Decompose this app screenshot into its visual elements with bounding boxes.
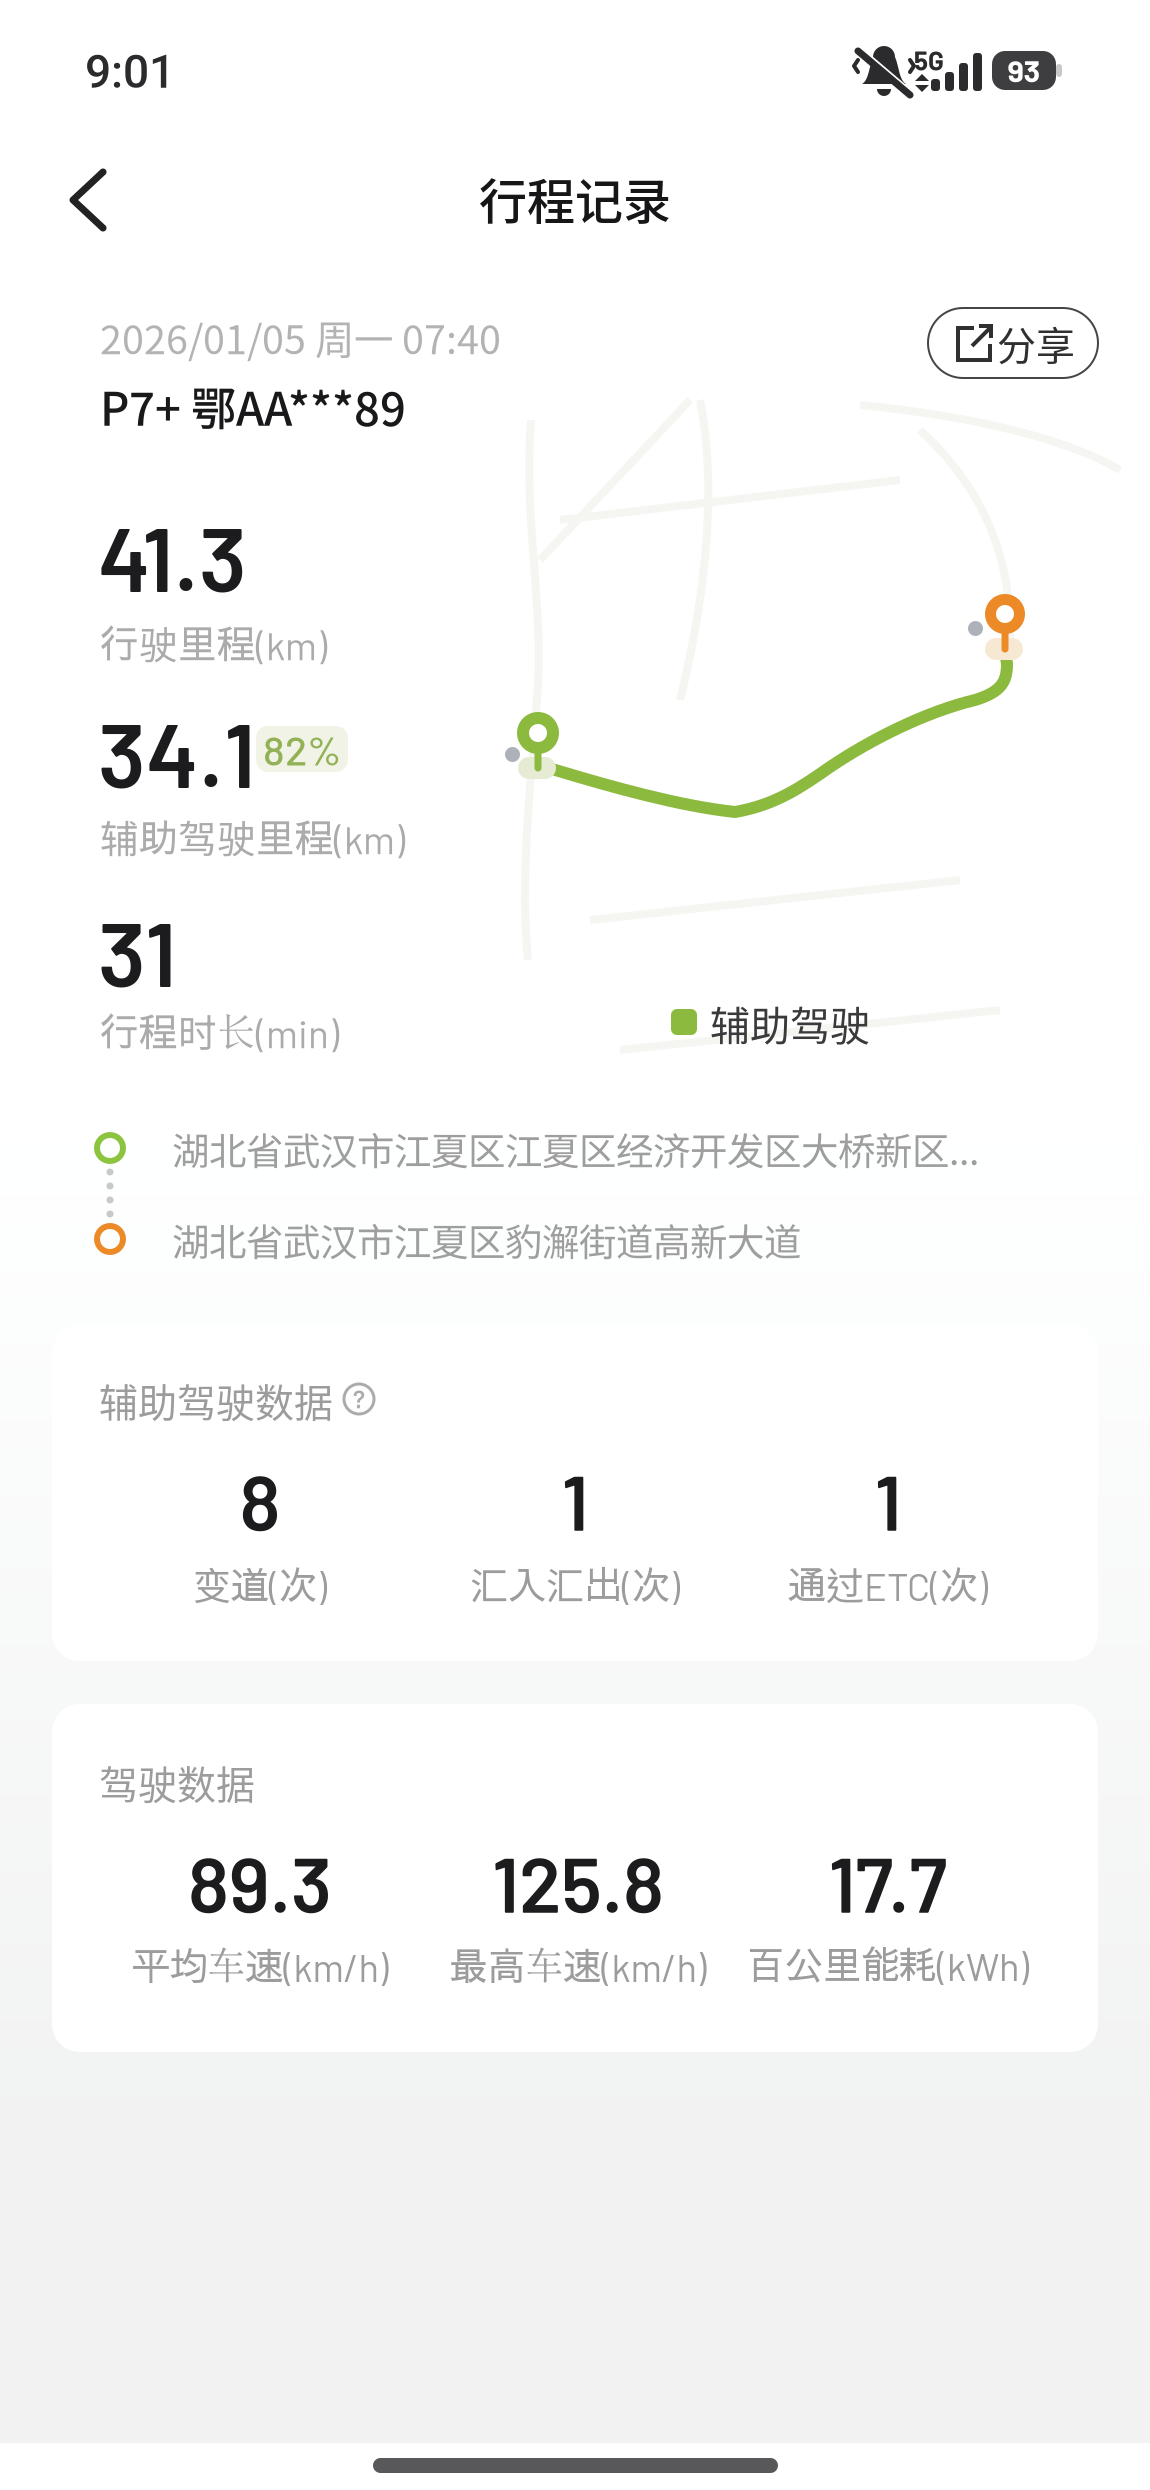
staticText: 9:01 (85, 45, 175, 99)
button[interactable]: ? (344, 1384, 374, 1414)
button[interactable]: 分享 (928, 308, 1098, 378)
staticText: 17.7 (828, 1836, 947, 1928)
staticText: 行驶里程(km) (100, 615, 327, 669)
staticText: 1 (874, 1454, 901, 1546)
staticText: 1 (561, 1454, 588, 1546)
staticText: 行程记录 (479, 163, 671, 233)
staticText: 89.3 (188, 1836, 332, 1928)
staticText: 湖北省武汉市江夏区江夏区经济开发区大桥新区... (172, 1122, 979, 1176)
staticText: 平均车速(km/h) (131, 1935, 388, 1990)
staticText: 31 (98, 897, 177, 1005)
staticText: ? (353, 1385, 365, 1413)
staticText: 125.8 (492, 1836, 664, 1928)
staticText: 通过ETC(次) (788, 1557, 988, 1609)
button[interactable] (23, 160, 153, 240)
staticText: 辅助驾驶 (710, 994, 870, 1052)
staticText: 辅助驾驶里程(km) (100, 809, 405, 863)
staticText: 82% (263, 724, 341, 774)
staticText: 最高车速(km/h) (449, 1935, 706, 1990)
staticText: 93 (1007, 51, 1040, 88)
staticText: 5G (914, 44, 944, 76)
staticText: 湖北省武汉市江夏区豹澥街道高新大道 (172, 1213, 801, 1267)
staticText: 行程时长(min) (100, 1001, 339, 1057)
staticText: 41.3 (98, 502, 247, 610)
staticText: 2026/01/05 周一 07:40 (100, 308, 501, 365)
staticText: 8 (239, 1454, 280, 1546)
staticText: P7+ 鄂AA***89 (100, 373, 406, 439)
staticText: 34.1 (98, 698, 256, 806)
staticText: 驾驶数据 (99, 1754, 255, 1810)
staticText: 变道(次) (193, 1557, 327, 1609)
staticText: 辅助驾驶数据 (99, 1372, 333, 1428)
staticText: 分享 (997, 315, 1075, 371)
staticText: 百公里能耗(kWh) (747, 1937, 1029, 1989)
staticText: 汇入汇出(次) (470, 1557, 680, 1609)
